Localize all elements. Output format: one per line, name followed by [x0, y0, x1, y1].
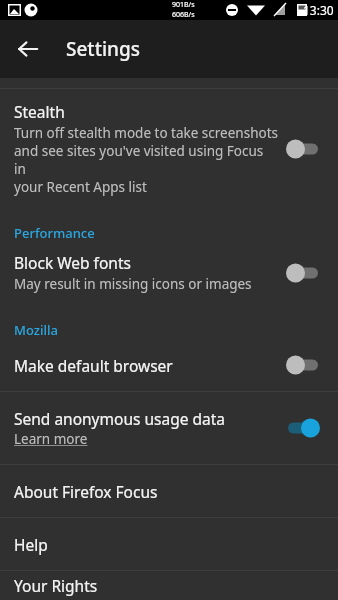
- button[interactable]: Block Web fonts: [0, 248, 338, 307]
- staticText: 606B/s: [172, 10, 195, 20]
- button[interactable]: Stealth: [0, 89, 338, 210]
- button[interactable]: Back: [8, 29, 48, 69]
- staticText: Send anonymous usage data: [14, 408, 225, 429]
- staticText: May result in missing icons or images: [14, 275, 252, 293]
- button[interactable]: Send anonymous usage data: [0, 392, 338, 464]
- staticText: Performance: [14, 224, 95, 242]
- staticText: 13:30: [303, 2, 334, 18]
- staticText: Turn off stealth mode to take screenshot…: [14, 124, 278, 196]
- staticText: About Firefox Focus: [14, 481, 158, 502]
- staticText: Stealth: [14, 101, 65, 122]
- button[interactable]: About Firefox Focus: [0, 465, 338, 517]
- button[interactable]: Help: [0, 518, 338, 570]
- staticText: 901B/s: [172, 0, 195, 10]
- staticText: Your Rights: [14, 575, 98, 596]
- staticText: Block Web fonts: [14, 252, 131, 273]
- button[interactable]: Your Rights: [0, 571, 338, 600]
- button[interactable]: Learn more: [14, 430, 88, 448]
- staticText: Settings: [66, 36, 140, 62]
- button[interactable]: Make default browser: [0, 345, 338, 391]
- staticText: Help: [14, 534, 48, 555]
- staticText: Mozilla: [14, 321, 58, 339]
- staticText: Make default browser: [14, 355, 284, 376]
